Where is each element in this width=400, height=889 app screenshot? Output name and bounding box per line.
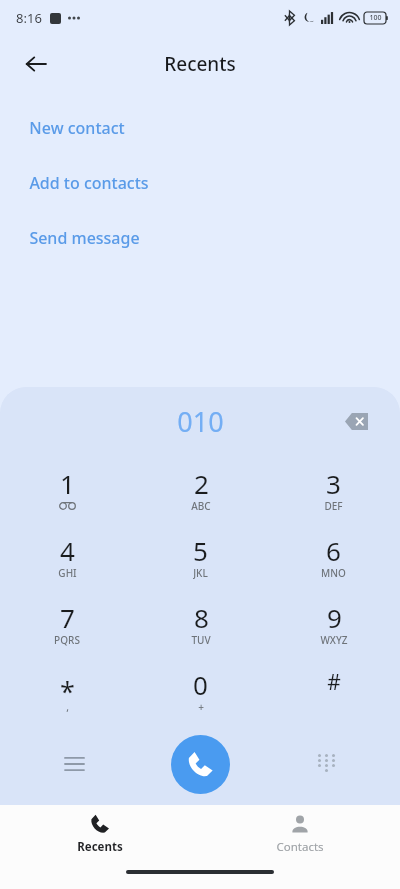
staticText: 100 <box>369 13 382 23</box>
staticText: GHI <box>58 566 77 579</box>
staticText: 2 <box>194 466 209 496</box>
staticText: DEF <box>324 499 343 512</box>
staticText: 7 <box>60 600 75 630</box>
button[interactable]: Backspace <box>336 401 376 441</box>
button[interactable]: Contacts <box>200 805 400 863</box>
staticText: 5 <box>193 533 208 563</box>
button[interactable]: Recents <box>0 805 200 863</box>
staticText: PQRS <box>54 633 80 646</box>
button[interactable]: 3 <box>267 455 400 522</box>
button[interactable]: 1 <box>0 455 134 522</box>
staticText: MNO <box>321 566 346 579</box>
button[interactable]: 5 <box>134 522 267 589</box>
staticText: Recents <box>164 51 236 77</box>
button[interactable]: 8 <box>134 589 267 656</box>
staticText: , <box>66 700 69 713</box>
staticText: * <box>60 673 75 703</box>
staticText: WXYZ <box>320 633 348 646</box>
staticText: # <box>327 668 341 697</box>
button[interactable]: # <box>267 656 400 723</box>
staticText: 6 <box>326 533 341 563</box>
staticText: 8:16 <box>16 9 42 27</box>
staticText: ABC <box>191 499 211 512</box>
button[interactable]: Back <box>14 42 58 86</box>
staticText: 010 <box>177 403 224 440</box>
button[interactable]: 9 <box>267 589 400 656</box>
button[interactable]: * <box>0 656 134 723</box>
staticText: 1 <box>60 466 75 496</box>
staticText: Send message <box>29 227 140 249</box>
button[interactable]: 6 <box>267 522 400 589</box>
staticText: JKL <box>193 566 208 579</box>
button[interactable]: Send message <box>0 210 400 265</box>
button[interactable]: 2 <box>134 455 267 522</box>
staticText: Contacts <box>276 839 324 855</box>
staticText: 4 <box>60 533 75 563</box>
button[interactable]: Call <box>171 735 230 794</box>
staticText: TUV <box>191 633 211 646</box>
button[interactable]: 0 <box>134 656 267 723</box>
staticText: 0 <box>193 667 208 697</box>
staticText: Recents <box>77 839 123 855</box>
staticText: Add to contacts <box>29 172 149 194</box>
button[interactable]: 4 <box>0 522 134 589</box>
staticText: + <box>198 700 204 713</box>
staticText: 9 <box>327 600 342 630</box>
staticText: 3 <box>326 466 341 496</box>
button[interactable]: Add to contacts <box>0 155 400 210</box>
button[interactable]: 7 <box>0 589 134 656</box>
button[interactable]: Dialpad <box>306 744 346 784</box>
staticText: 8 <box>194 600 209 630</box>
button[interactable]: More options <box>54 744 94 784</box>
button[interactable]: New contact <box>0 100 400 155</box>
staticText: New contact <box>29 117 125 139</box>
